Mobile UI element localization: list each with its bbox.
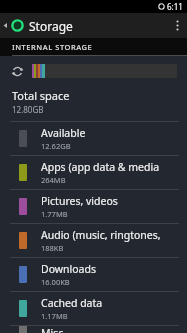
button[interactable]: More options	[167, 13, 187, 38]
staticText: 6:11	[167, 1, 183, 12]
staticText: Storage	[29, 18, 73, 34]
other: Storage	[11, 19, 24, 32]
staticText: Available	[41, 126, 86, 140]
button[interactable]: Refresh	[10, 64, 24, 78]
staticText: Total space	[12, 88, 70, 103]
staticText: 12.80GB	[12, 104, 44, 115]
button[interactable]: Misc.	[0, 326, 187, 333]
staticText: 1.17MB	[41, 311, 68, 321]
staticText: INTERNAL STORAGE	[12, 42, 93, 52]
staticText: Cached data	[41, 296, 103, 310]
button[interactable]: Back	[0, 13, 11, 38]
staticText: 264MB	[41, 175, 66, 185]
staticText: Pictures, videos	[41, 194, 118, 208]
button[interactable]: Downloads	[0, 258, 187, 291]
staticText: Misc.	[41, 326, 67, 333]
staticText: 188KB	[41, 243, 64, 253]
button[interactable]: Audio (music, ringtones, podc..	[0, 224, 187, 257]
button[interactable]: Total space	[0, 85, 187, 121]
staticText: 12.62GB	[41, 141, 71, 151]
staticText: Downloads	[41, 262, 96, 276]
button[interactable]: Cached data	[0, 292, 187, 325]
button[interactable]: Pictures, videos	[0, 190, 187, 223]
staticText: Apps (app data & media cont..	[41, 160, 183, 174]
staticText: 16.00KB	[41, 277, 70, 287]
staticText: Audio (music, ringtones, podc..	[41, 228, 183, 242]
button[interactable]: Available	[0, 122, 187, 155]
button[interactable]: Apps (app data & media cont..	[0, 156, 187, 189]
staticText: 1.77MB	[41, 209, 68, 219]
